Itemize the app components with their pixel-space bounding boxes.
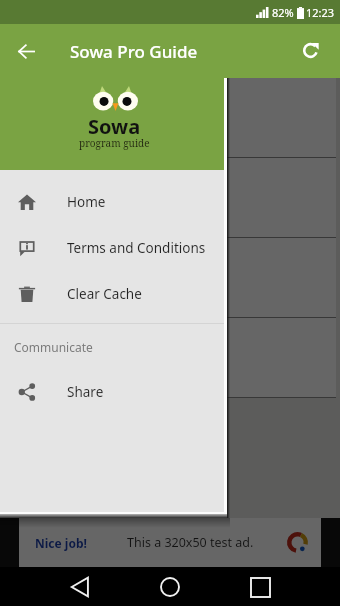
button[interactable]: [0, 318, 336, 397]
button[interactable]: Home: [0, 179, 224, 225]
button[interactable]: [0, 158, 336, 237]
button[interactable]: [0, 78, 336, 157]
button[interactable]: Share: [0, 369, 224, 415]
staticText: Share: [67, 383, 104, 401]
button[interactable]: Back: [4, 29, 48, 73]
staticText: Clear Cache: [67, 285, 142, 303]
button[interactable]: Home: [151, 568, 189, 606]
staticText: 82%: [272, 5, 294, 20]
staticText: Sowa: [88, 113, 141, 140]
button[interactable]: [0, 238, 336, 317]
staticText: program guide: [79, 136, 150, 150]
staticText: Communicate: [14, 339, 93, 355]
staticText: Sowa Pro Guide: [70, 40, 198, 63]
staticText: Home: [67, 193, 106, 211]
button[interactable]: Terms and Conditions: [0, 225, 224, 271]
button[interactable]: Refresh: [288, 29, 332, 73]
button[interactable]: Back: [61, 568, 99, 606]
staticText: This a 320x50 test ad.: [127, 534, 254, 551]
button[interactable]: Recent apps: [241, 568, 279, 606]
staticText: 12:23: [306, 5, 335, 20]
button[interactable]: Clear Cache: [0, 271, 224, 317]
button[interactable]: Nice job!: [19, 518, 321, 567]
staticText: Nice job!: [35, 535, 87, 551]
staticText: Terms and Conditions: [67, 239, 206, 257]
